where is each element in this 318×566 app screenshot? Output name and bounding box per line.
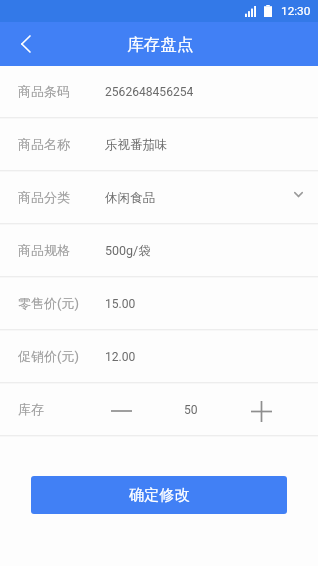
button[interactable]: 库存	[0, 384, 318, 437]
staticText: 库存	[18, 401, 44, 417]
button[interactable]: 零售价(元)	[0, 278, 318, 331]
button[interactable]: Increase quantity	[244, 391, 278, 431]
staticText: 商品规格	[18, 242, 70, 258]
button[interactable]: Back	[0, 22, 46, 66]
staticText: 50	[184, 403, 198, 417]
button[interactable]: 商品名称	[0, 119, 318, 172]
button[interactable]: 商品分类	[0, 172, 318, 225]
staticText: 零售价(元)	[18, 295, 79, 311]
staticText: 确定修改	[129, 485, 190, 504]
button[interactable]: 商品条码	[0, 66, 318, 119]
staticText: 12.00	[105, 350, 136, 364]
button[interactable]: Decrease quantity	[104, 391, 138, 431]
button[interactable]: 确定修改	[31, 476, 287, 514]
staticText: 商品条码	[18, 83, 70, 99]
staticText: 商品名称	[18, 136, 70, 152]
staticText: 休闲食品	[105, 190, 155, 206]
staticText: 12:30	[281, 4, 311, 18]
staticText: 促销价(元)	[18, 348, 79, 364]
staticText: 库存盘点	[127, 34, 194, 55]
staticText: 15.00	[105, 297, 136, 311]
staticText: 乐视番茄味	[105, 137, 168, 153]
staticText: 商品分类	[18, 189, 70, 205]
button[interactable]: Choose category	[281, 172, 315, 225]
button[interactable]: 促销价(元)	[0, 331, 318, 384]
button[interactable]: 商品规格	[0, 225, 318, 278]
staticText: 2562648456254	[105, 85, 194, 99]
staticText: 500g/袋	[105, 243, 151, 259]
